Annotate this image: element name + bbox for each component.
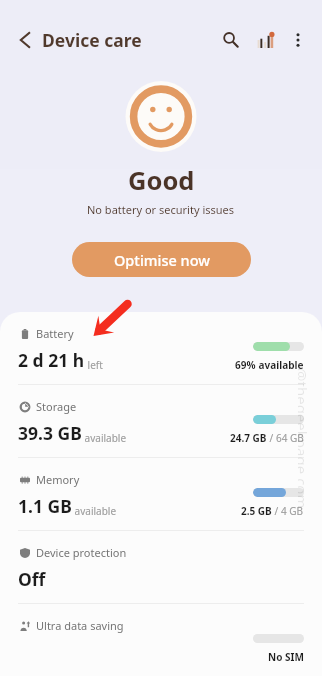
staticText: No SIM [268,650,304,664]
staticText: Battery [36,326,74,341]
button[interactable]: Back [8,23,42,57]
staticText: No battery or security issues [87,202,235,217]
staticText: available [256,358,304,372]
staticText: / 4 GB [272,504,304,518]
button[interactable]: Storage [0,385,322,457]
button[interactable]: Device protection [0,531,322,603]
button[interactable]: Search [213,22,248,57]
staticText: Optimise now [114,250,210,270]
staticText: 69% [235,358,256,372]
staticText: Device protection [36,545,127,560]
button[interactable]: More options [281,23,314,56]
staticText: @thegeekpage.com [298,368,312,509]
button[interactable]: Ultra data saving [0,604,322,676]
staticText: / 64 GB [267,431,304,445]
staticText: 24.7 GB [230,431,267,445]
button[interactable]: Battery [0,312,322,384]
button[interactable]: Optimise now [72,242,251,277]
staticText: Off [18,567,46,591]
staticText: left [85,358,103,372]
staticText: Ultra data saving [36,618,124,633]
staticText: Storage [36,399,77,414]
staticText: Device care [42,28,142,52]
staticText: 39.3 GB [18,421,82,445]
staticText: available [72,504,117,518]
staticText: Memory [36,472,80,487]
staticText: 2 d 21 h [18,348,85,372]
button[interactable]: Memory [0,458,322,530]
staticText: available [82,431,127,445]
staticText: 2.5 GB [241,504,272,518]
button[interactable]: Statistics [248,23,283,58]
staticText: Good [128,163,195,198]
staticText: 1.1 GB [18,494,72,518]
